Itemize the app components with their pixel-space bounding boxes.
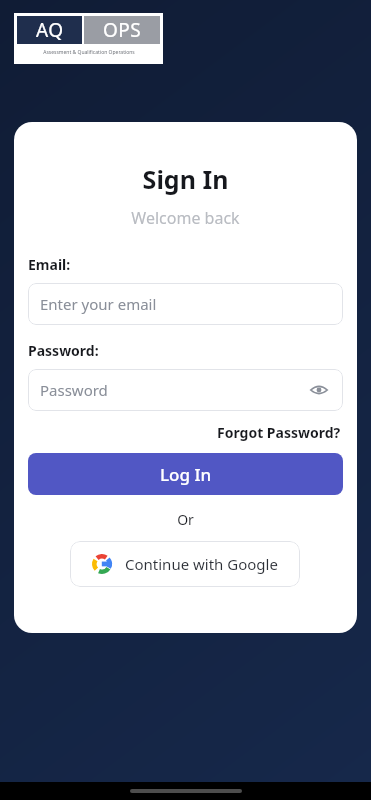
staticText: Continue with Google (125, 554, 278, 574)
staticText: Assessment & Qualification Operations (43, 49, 135, 56)
staticText: Log In (160, 463, 212, 486)
staticText: Email: (28, 255, 71, 274)
button[interactable]: Forgot Password? (215, 421, 343, 444)
staticText: AQ (36, 17, 64, 43)
staticText: Password (40, 380, 108, 400)
staticText: Sign In (28, 162, 343, 196)
button[interactable]: Password (28, 369, 343, 411)
staticText: Or (28, 510, 343, 529)
staticText: Forgot Password? (217, 423, 341, 442)
staticText: Enter your email (40, 294, 157, 314)
button[interactable]: Enter your email (28, 283, 343, 325)
staticText: Welcome back (28, 207, 343, 229)
button[interactable]: Continue with Google (70, 541, 300, 587)
staticText: OPS (103, 17, 142, 43)
button[interactable]: Show password (307, 378, 331, 402)
button[interactable]: Log In (28, 453, 343, 495)
staticText: Password: (28, 341, 99, 360)
